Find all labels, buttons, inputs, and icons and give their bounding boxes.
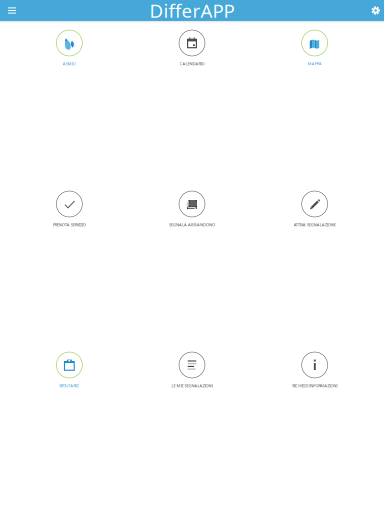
staticText: MAPPA: [308, 61, 322, 66]
button[interactable]: ASMIU: [8, 30, 131, 191]
staticText: LE MIE SEGNALAZIONI: [171, 383, 212, 388]
button[interactable]: ATTIVA SEGNALAZIONE: [253, 191, 376, 352]
staticText: PRENOTA SERVIZIO: [53, 222, 86, 227]
staticText: RICHIEDI INFORMAZIONI: [292, 383, 337, 388]
button[interactable]: LE MIE SEGNALAZIONI: [131, 352, 253, 512]
button[interactable]: RICHIEDI INFORMAZIONI: [253, 352, 376, 512]
staticText: SEGNALA ABBANDONO: [169, 222, 215, 227]
button[interactable]: Settings: [369, 0, 382, 21]
staticText: ASMIU: [63, 61, 76, 66]
staticText: DifferAPP: [149, 0, 234, 23]
button[interactable]: CALENDARIO: [131, 30, 253, 191]
button[interactable]: MAPPA: [253, 30, 376, 191]
button[interactable]: RIFIUTARIO: [8, 352, 131, 512]
button[interactable]: PRENOTA SERVIZIO: [8, 191, 131, 352]
button[interactable]: SEGNALA ABBANDONO: [131, 191, 253, 352]
button[interactable]: Menu: [2, 0, 22, 21]
staticText: RIFIUTARIO: [59, 383, 79, 388]
staticText: CALENDARIO: [179, 61, 204, 66]
staticText: ATTIVA SEGNALAZIONE: [294, 222, 336, 227]
